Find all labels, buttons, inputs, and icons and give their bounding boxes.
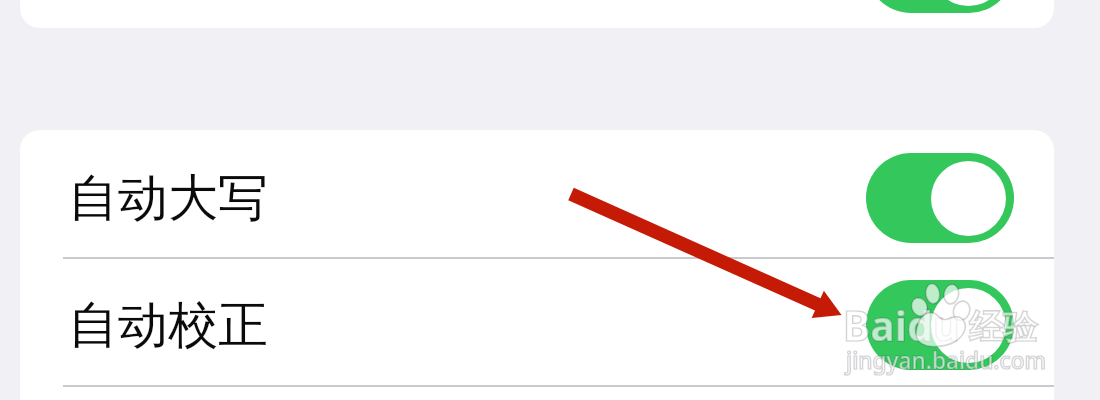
button[interactable]: 自动校正 [20,257,1054,384]
staticText: 自动大写 [68,167,268,230]
staticText: Baidu [843,297,960,353]
staticText: Baidu [843,297,960,353]
button[interactable]: 自动大写 [20,130,1054,257]
staticText: jingyan.baidu.com [846,345,1047,376]
staticText: 自动校正 [68,294,268,357]
button[interactable]: On [866,153,1014,243]
staticText: 经验 [969,306,1037,349]
button[interactable]: On [866,0,1014,13]
staticText: jingyan.baidu.com [846,345,1047,376]
staticText: 经验 [969,306,1037,349]
button[interactable]: On [866,280,1014,370]
